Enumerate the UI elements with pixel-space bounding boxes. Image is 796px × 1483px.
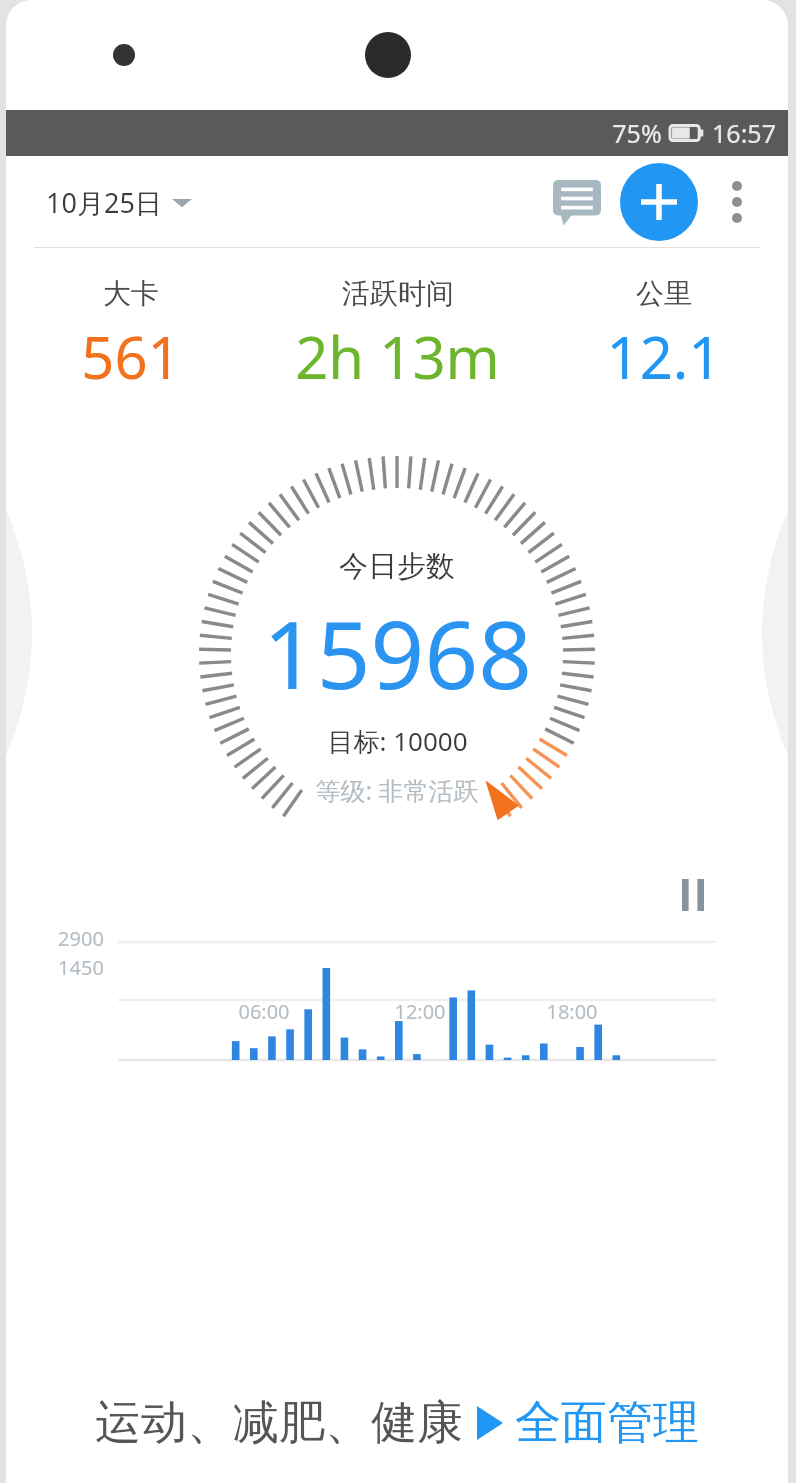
button[interactable]: More options [706, 171, 768, 233]
button[interactable]: 活跃时间 [255, 276, 540, 396]
staticText: 公里 [636, 276, 692, 311]
staticText: 15968 [263, 589, 532, 717]
staticText: 目标: 10000 [327, 723, 468, 759]
button[interactable]: 今日步数 [6, 446, 788, 866]
staticText: 06:00 [238, 998, 290, 1025]
staticText: 全面管理 [515, 1394, 699, 1452]
staticText: 12.1 [606, 317, 722, 396]
button[interactable]: 大卡 [6, 276, 255, 396]
button[interactable]: 2900 [6, 924, 788, 1096]
staticText: 等级: 非常活跃 [315, 773, 479, 807]
staticText: 今日步数 [339, 548, 455, 585]
button[interactable]: Add [620, 163, 698, 241]
button[interactable]: 公里 [540, 276, 788, 396]
button[interactable]: 10月25日 [46, 184, 192, 221]
staticText: 大卡 [103, 276, 159, 311]
staticText: 运动、减肥、健康 [95, 1394, 463, 1452]
staticText: 18:00 [546, 998, 598, 1025]
button[interactable]: 运动、减肥、健康 [6, 1363, 788, 1483]
staticText: 12:00 [394, 998, 446, 1025]
staticText: 2900 [58, 925, 104, 952]
staticText: 活跃时间 [342, 276, 454, 311]
staticText: 561 [81, 317, 181, 396]
staticText: 1450 [58, 954, 104, 981]
button[interactable]: Pause [670, 872, 716, 918]
staticText: 16:57 [712, 116, 776, 150]
staticText: 2h 13m [295, 317, 500, 396]
staticText: 10月25日 [46, 184, 162, 221]
button[interactable]: Messages [544, 169, 610, 235]
staticText: 75% [612, 116, 662, 150]
